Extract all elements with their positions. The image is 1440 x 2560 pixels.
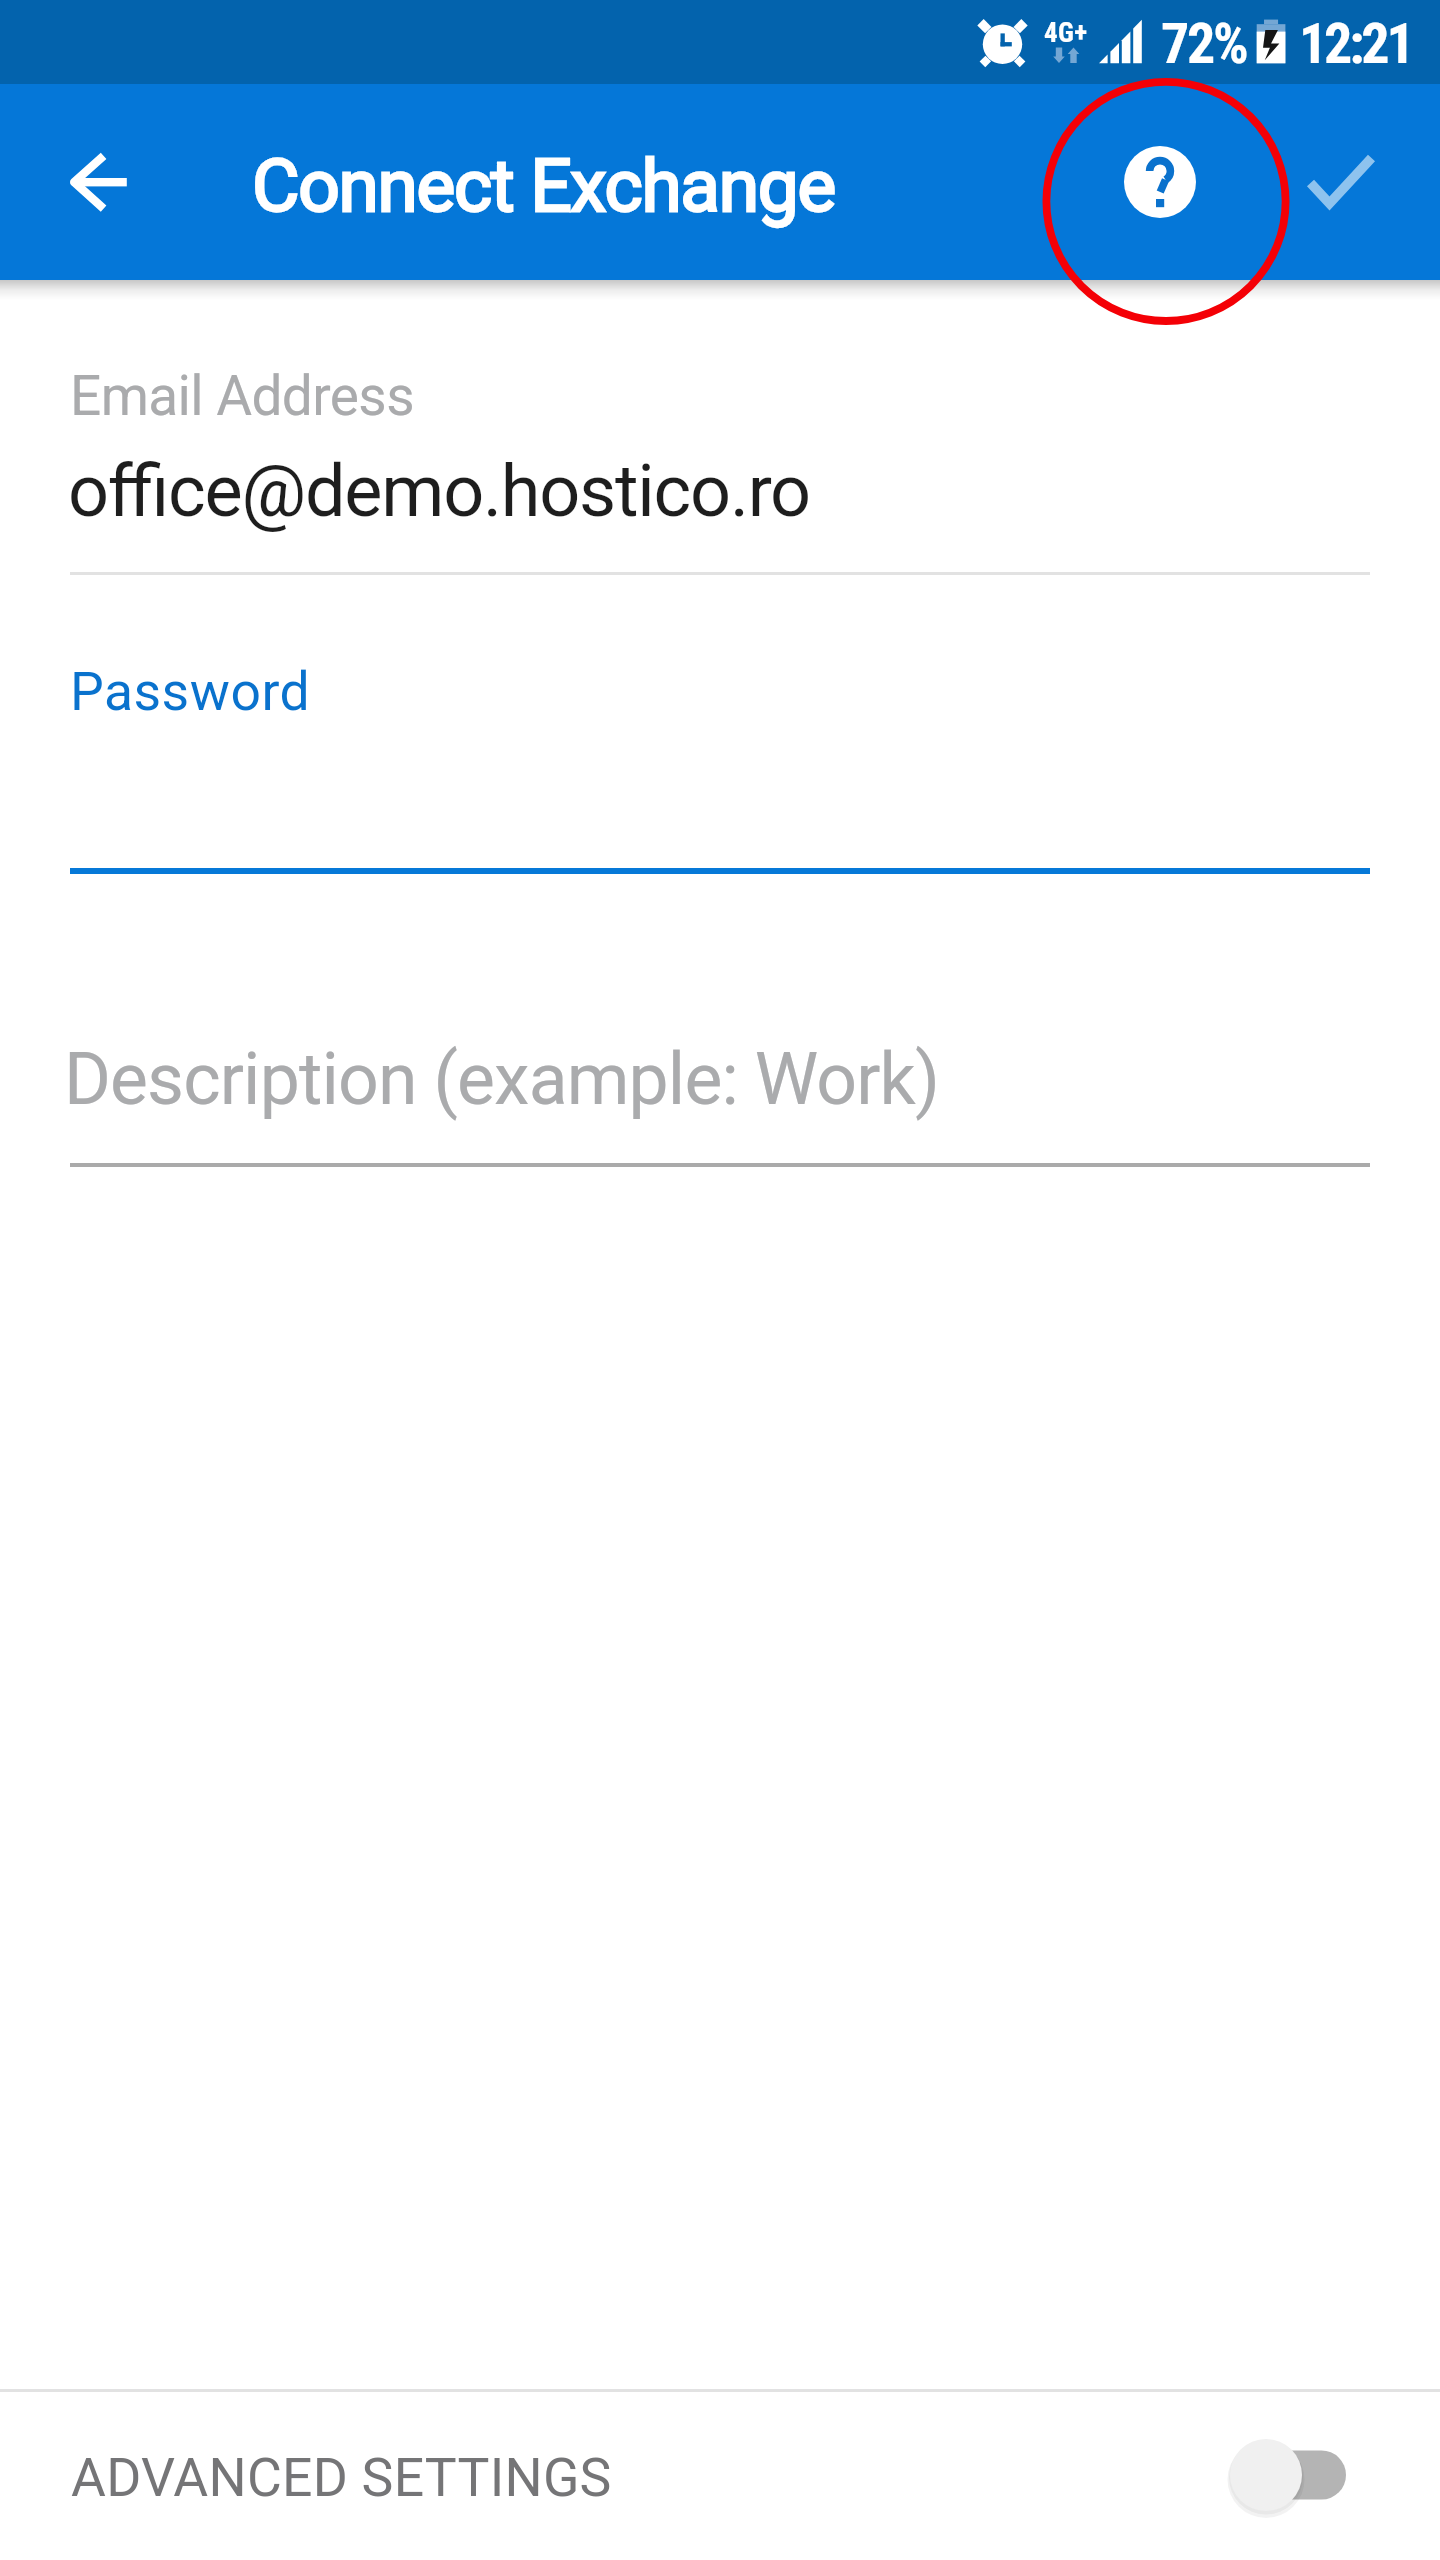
button[interactable]: Email Address: [70, 330, 1370, 575]
button[interactable]: Password: [70, 620, 1370, 874]
button[interactable]: Help: [1102, 124, 1218, 240]
button[interactable]: Navigate up: [44, 126, 160, 242]
staticText: 12:21: [1299, 11, 1412, 77]
button[interactable]: Description (example: Work): [70, 1000, 1370, 1167]
staticText: Email Address: [70, 364, 414, 428]
staticText: ADVANCED SETTINGS: [71, 2446, 612, 2509]
staticText: Description (example: Work): [64, 1038, 939, 1122]
staticText: 4G+: [1044, 17, 1088, 49]
staticText: 72%: [1161, 11, 1247, 77]
staticText: Password: [70, 660, 311, 723]
button[interactable]: Toggle advanced settings: [1211, 2411, 1339, 2539]
staticText: office@demo.hostico.ro: [68, 449, 810, 533]
staticText: Connect Exchange: [252, 143, 835, 229]
button[interactable]: Done: [1283, 124, 1399, 240]
button[interactable]: ADVANCED SETTINGS: [0, 2392, 1440, 2560]
